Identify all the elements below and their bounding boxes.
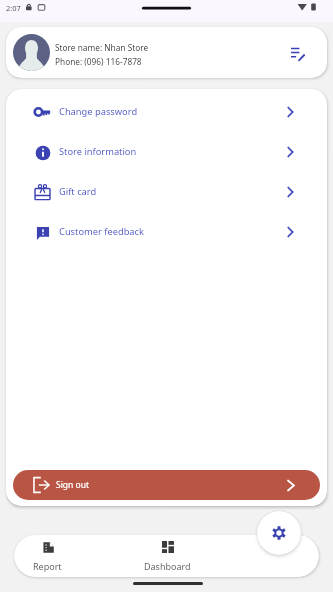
button[interactable]: Report	[14, 535, 81, 577]
button[interactable]: Dashboard	[81, 535, 254, 577]
staticText: Store information	[59, 145, 137, 158]
staticText: Customer feedback	[59, 225, 145, 238]
staticText: Report	[33, 560, 62, 572]
staticText: Change password	[59, 105, 138, 118]
staticText: Store name: Nhan Store	[55, 42, 149, 53]
button[interactable]: Customer feedback	[6, 212, 327, 252]
staticText: Sign out	[56, 479, 90, 491]
button[interactable]: Sign out	[13, 470, 320, 500]
staticText: Dashboard	[144, 560, 191, 572]
button[interactable]: Store name: Nhan Store	[6, 27, 327, 78]
button[interactable]: Store information	[6, 132, 327, 172]
button[interactable]: Edit store information	[288, 36, 322, 70]
staticText: Gift card	[59, 185, 97, 198]
staticText: Phone: (096) 116-7878	[55, 56, 142, 67]
button[interactable]: Gift card	[6, 172, 327, 212]
button[interactable]: Settings	[257, 511, 301, 555]
button[interactable]: Change password	[6, 92, 327, 132]
staticText: 2:07	[6, 3, 21, 13]
